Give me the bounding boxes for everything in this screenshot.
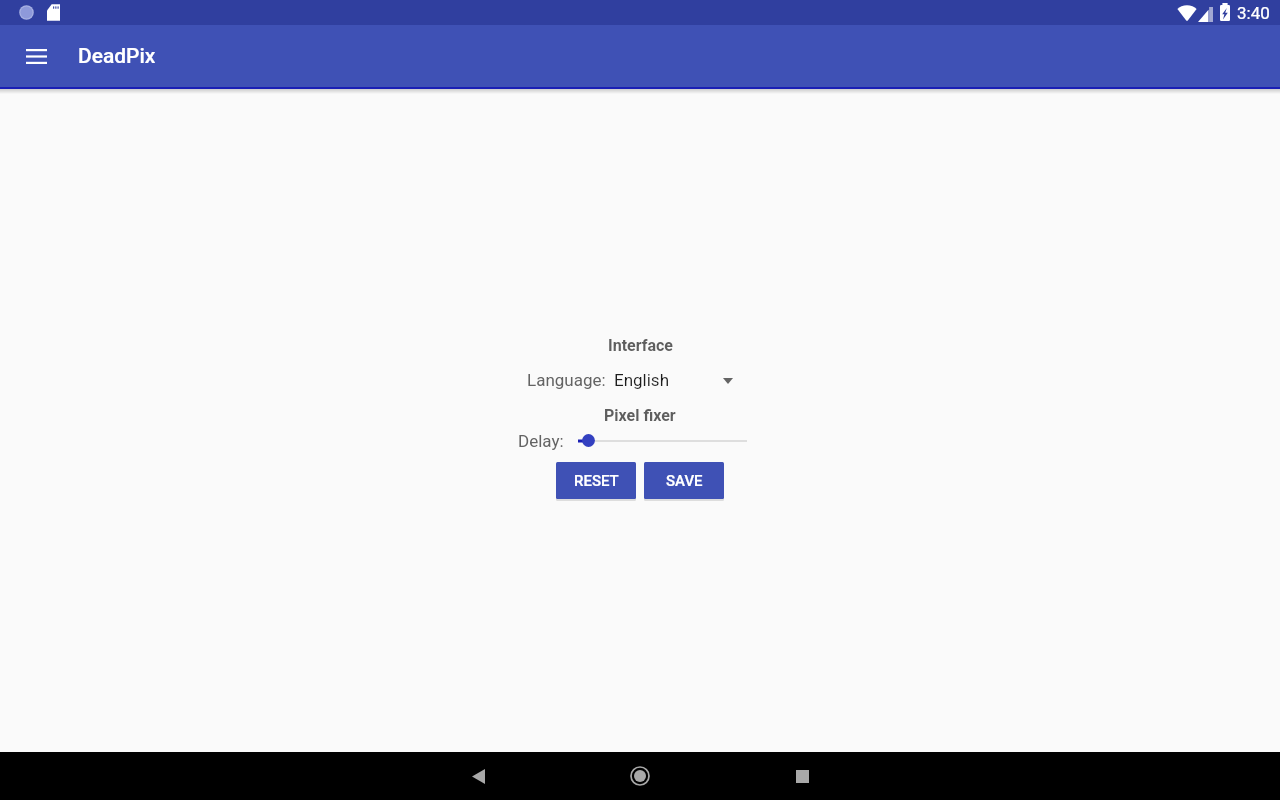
button[interactable]: Back (454, 752, 502, 800)
staticText: RESET (574, 472, 619, 490)
staticText: Interface (608, 336, 673, 355)
button[interactable]: Open navigation menu (12, 32, 60, 80)
button[interactable]: Recent apps (778, 752, 826, 800)
button[interactable]: Home (616, 752, 664, 800)
staticText: Delay: (518, 431, 564, 451)
staticText: DeadPix (78, 44, 156, 69)
button[interactable]: RESET (556, 462, 636, 499)
button[interactable]: Delay slider (578, 430, 747, 452)
button[interactable]: SAVE (644, 462, 724, 499)
staticText: Pixel fixer (604, 406, 676, 425)
staticText: Language: (527, 370, 606, 390)
staticText: 3:40 (1237, 3, 1270, 23)
button[interactable]: English (614, 369, 733, 391)
staticText: English (614, 370, 670, 390)
staticText: SAVE (666, 472, 703, 490)
